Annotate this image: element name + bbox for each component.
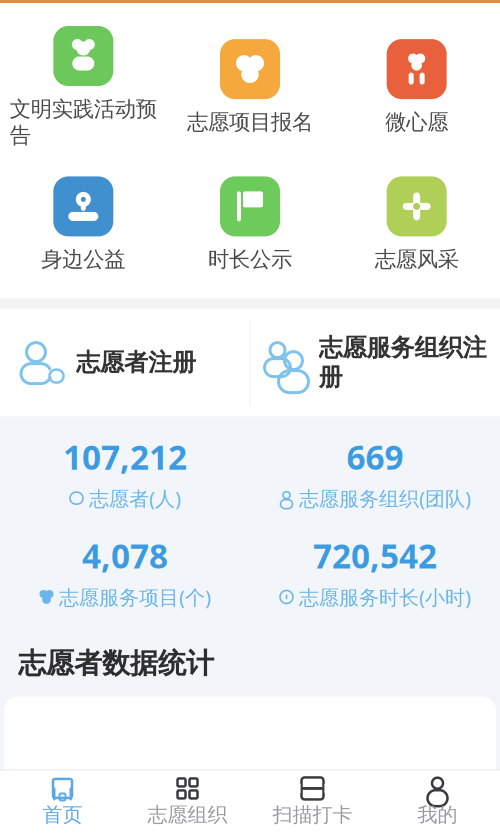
staticText: 铜壶街道:6030 <box>18 787 131 810</box>
staticText: 身边公益 <box>41 246 125 273</box>
staticText: 志愿服务时长(小时) <box>299 584 471 610</box>
staticText: 669 <box>346 435 403 479</box>
staticText: 720,542 <box>313 533 437 578</box>
button[interactable]: 志愿服务组织注册 <box>250 309 500 417</box>
button[interactable]: 文明实践活动预告 <box>0 22 167 152</box>
button[interactable]: 身边公益 <box>0 172 167 277</box>
staticText: 志愿服务组织注册 <box>318 333 486 392</box>
staticText: 我的 <box>417 802 457 827</box>
staticText: 时长公示 <box>208 246 292 273</box>
staticText: 志愿服务组织(团队) <box>299 485 471 511</box>
staticText: 首页 <box>42 802 82 827</box>
button[interactable]: 微心愿 <box>333 35 500 139</box>
staticText: 志愿者注册 <box>76 348 196 377</box>
staticText: 高桥岭街道:14106 <box>346 787 486 810</box>
button[interactable]: 我的 <box>375 770 500 835</box>
staticText: 文明实践活动预告 <box>10 96 157 148</box>
staticText: 志愿项目报名 <box>187 109 313 135</box>
staticText: 志愿组织 <box>147 802 227 827</box>
staticText: 志愿者数据统计 <box>18 646 214 681</box>
staticText: 黄金园街道:2225 <box>185 771 315 794</box>
staticText: 107,212 <box>63 435 187 479</box>
button[interactable]: 扫描打卡 <box>250 770 375 835</box>
button[interactable]: 志愿组织 <box>125 770 250 835</box>
button[interactable]: 首页 <box>0 770 125 835</box>
staticText: 志愿服务项目(个) <box>59 584 211 610</box>
staticText: 微心愿 <box>385 109 448 135</box>
button[interactable]: 志愿风采 <box>333 172 500 277</box>
button[interactable]: 时长公示 <box>167 172 333 277</box>
staticText: 志愿者(人) <box>89 485 181 511</box>
staticText: 4,078 <box>82 533 168 578</box>
button[interactable]: 志愿者注册 <box>0 309 249 417</box>
staticText: 志愿风采 <box>375 246 459 273</box>
button[interactable]: 志愿项目报名 <box>167 35 333 139</box>
staticText: 扫描打卡 <box>272 802 352 827</box>
